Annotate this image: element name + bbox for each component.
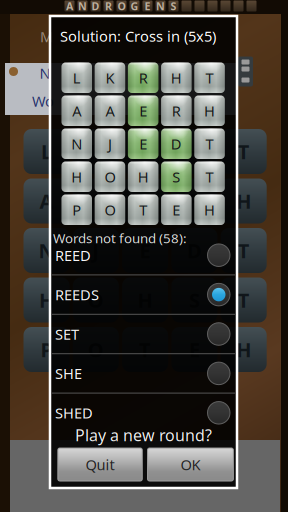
staticText: A xyxy=(105,101,114,120)
staticText: D xyxy=(171,134,182,153)
staticText: Wo xyxy=(32,91,54,111)
staticText: O xyxy=(88,287,104,313)
button[interactable]: SHED xyxy=(52,394,235,432)
staticText: G xyxy=(130,0,138,13)
staticText: T xyxy=(206,167,214,186)
staticText: O xyxy=(88,336,104,363)
staticText: H xyxy=(138,167,149,186)
button[interactable]: REEDS xyxy=(52,275,235,314)
staticText: SHE xyxy=(55,364,82,383)
staticText: N xyxy=(156,0,165,13)
staticText: T xyxy=(238,287,250,313)
staticText: H xyxy=(187,138,202,165)
staticText: Quit xyxy=(85,455,114,474)
staticText: T xyxy=(139,200,147,219)
staticText: O xyxy=(104,167,115,186)
button[interactable]: SHE xyxy=(52,354,235,393)
button[interactable]: REED xyxy=(52,236,235,274)
staticText: E xyxy=(140,188,151,214)
staticText: P xyxy=(40,336,52,363)
staticText: A xyxy=(89,188,103,214)
staticText: N xyxy=(78,0,87,13)
staticText: T xyxy=(238,138,250,165)
staticText: R xyxy=(139,138,152,165)
staticText: T xyxy=(206,68,214,87)
staticText: SHED xyxy=(55,403,93,423)
staticText: E xyxy=(189,336,200,363)
staticText: H xyxy=(39,287,54,313)
staticText: J xyxy=(92,237,99,264)
staticText: A xyxy=(72,101,81,120)
staticText: T xyxy=(206,134,214,153)
staticText: S xyxy=(170,0,176,13)
staticText: R xyxy=(188,188,201,214)
staticText: O xyxy=(104,200,115,219)
staticText: Play a new round? xyxy=(75,424,212,446)
staticText: A xyxy=(39,188,53,214)
button[interactable]: OK xyxy=(148,448,233,481)
staticText: D xyxy=(91,0,99,13)
staticText: A xyxy=(66,0,73,13)
staticText: E xyxy=(139,101,147,120)
staticText: S xyxy=(172,167,180,186)
button[interactable]: Quit xyxy=(58,448,142,481)
staticText: L xyxy=(41,138,52,165)
staticText: N xyxy=(38,237,54,264)
staticText: R xyxy=(105,0,112,13)
button[interactable]: SET xyxy=(52,315,235,353)
staticText: REED xyxy=(55,245,91,265)
staticText: Words not found (58): xyxy=(53,229,187,247)
staticText: K xyxy=(89,138,102,165)
staticText: R xyxy=(139,68,148,87)
staticText: E xyxy=(172,200,180,219)
staticText: E xyxy=(140,237,151,264)
staticText: H xyxy=(171,68,182,87)
staticText: H xyxy=(236,336,251,363)
staticText: H xyxy=(236,188,251,214)
staticText: H xyxy=(204,200,215,219)
staticText: Solution: Cross in (5x5) xyxy=(60,26,216,46)
staticText: H xyxy=(204,101,215,120)
staticText: OK xyxy=(180,455,200,474)
staticText: O xyxy=(117,0,125,13)
staticText: E xyxy=(139,134,147,153)
staticText: N xyxy=(71,134,82,153)
staticText: M xyxy=(40,27,53,46)
staticText: J xyxy=(108,134,112,153)
staticText: H xyxy=(71,167,82,186)
staticText: N xyxy=(39,63,50,83)
staticText: R xyxy=(172,101,181,120)
staticText: K xyxy=(105,68,114,87)
staticText: T xyxy=(139,336,151,363)
staticText: L xyxy=(73,68,81,87)
staticText: SET xyxy=(55,324,79,344)
staticText: P xyxy=(72,200,81,219)
staticText: T xyxy=(238,237,250,264)
staticText: REEDS xyxy=(55,285,99,304)
staticText: E xyxy=(144,0,150,13)
